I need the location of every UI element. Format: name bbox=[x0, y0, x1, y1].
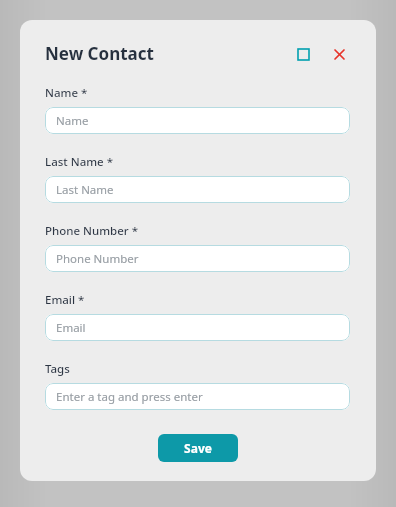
staticText: Last Name bbox=[56, 182, 114, 198]
button[interactable]: Name bbox=[45, 107, 350, 134]
staticText: Email bbox=[56, 320, 86, 336]
staticText: Tags bbox=[45, 361, 70, 377]
button[interactable]: Save bbox=[158, 434, 238, 462]
button[interactable]: Last Name bbox=[45, 176, 350, 203]
staticText: Phone Number * bbox=[45, 223, 138, 239]
staticText: Name * bbox=[45, 85, 88, 101]
staticText: Phone Number bbox=[56, 251, 139, 267]
staticText: Save bbox=[184, 440, 212, 456]
button[interactable]: Phone Number bbox=[45, 245, 350, 272]
button[interactable]: Email bbox=[45, 314, 350, 341]
button[interactable]: Enter a tag and press enter bbox=[45, 383, 350, 410]
staticText: Enter a tag and press enter bbox=[56, 389, 203, 405]
staticText: Last Name * bbox=[45, 154, 113, 170]
button[interactable]: Close bbox=[328, 43, 350, 65]
button[interactable]: Maximize bbox=[292, 43, 314, 65]
staticText: Name bbox=[56, 113, 89, 129]
staticText: New Contact bbox=[45, 42, 154, 65]
staticText: Email * bbox=[45, 292, 85, 308]
